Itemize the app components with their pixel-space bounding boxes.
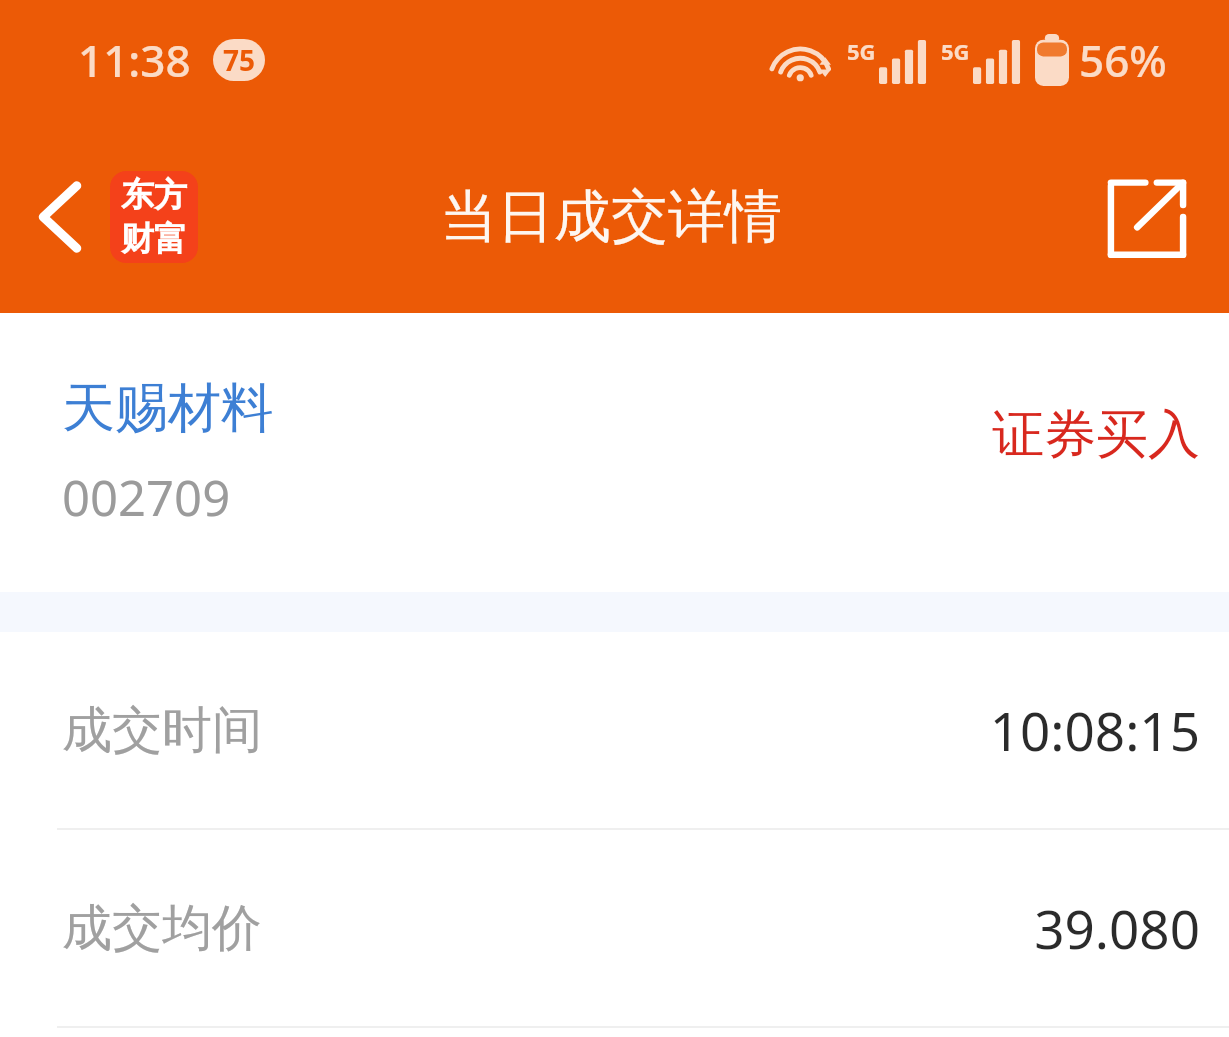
- staticText: 财富: [121, 218, 187, 260]
- staticText: 10:08:15: [989, 694, 1200, 766]
- staticText: 5G: [847, 36, 876, 66]
- staticText: 39.080: [1034, 892, 1200, 964]
- button[interactable]: Share: [1095, 165, 1199, 269]
- button[interactable]: 成交时间: [0, 632, 1229, 830]
- staticText: 当日成交详情: [440, 181, 782, 253]
- staticText: 东方: [121, 174, 187, 216]
- button[interactable]: Back: [26, 171, 94, 263]
- button[interactable]: 天赐材料: [0, 313, 1229, 592]
- staticText: 天赐材料: [62, 375, 274, 442]
- staticText: 成交时间: [62, 699, 262, 762]
- button[interactable]: 东方财富: [110, 171, 198, 263]
- staticText: 11:38: [78, 30, 191, 90]
- staticText: 002709: [62, 464, 231, 531]
- staticText: 75: [223, 41, 256, 79]
- staticText: 56%: [1079, 30, 1167, 90]
- staticText: 证券买入: [992, 402, 1200, 468]
- staticText: 5G: [941, 36, 970, 66]
- staticText: 成交均价: [62, 897, 262, 960]
- button[interactable]: 成交均价: [0, 830, 1229, 1028]
